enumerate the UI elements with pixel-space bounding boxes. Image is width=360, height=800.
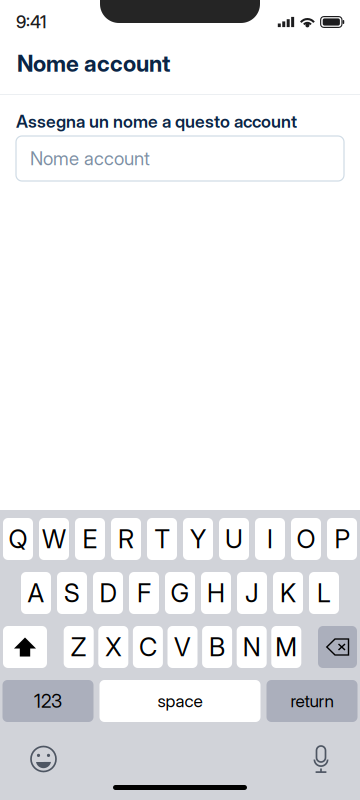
button[interactable]: K [273,572,303,614]
staticText: O [296,524,315,554]
staticText: B [209,632,225,662]
button[interactable]: Shift [3,626,47,668]
staticText: I [267,524,273,554]
button[interactable]: W [39,518,69,560]
staticText: J [245,578,259,608]
staticText: H [207,578,225,608]
button[interactable]: Y [183,518,213,560]
button[interactable]: T [147,518,177,560]
staticText: Nome account [17,50,170,77]
staticText: K [280,578,296,608]
button[interactable]: C [133,626,163,668]
button[interactable]: X [98,626,128,668]
button[interactable]: O [291,518,321,560]
staticText: N [243,632,261,662]
staticText: L [317,578,331,608]
button[interactable]: F [129,572,159,614]
staticText: E [82,524,97,554]
staticText: Y [190,524,206,554]
staticText: U [225,524,243,554]
staticText: M [275,632,297,662]
staticText: X [105,632,121,662]
staticText: W [42,524,66,554]
button[interactable]: G [165,572,195,614]
staticText: V [174,632,191,662]
staticText: F [137,578,151,608]
staticText: G [170,578,189,608]
staticText: T [154,524,169,554]
button[interactable]: M [271,626,301,668]
button[interactable]: Dictate [312,745,330,773]
staticText: space [157,690,202,711]
button[interactable]: E [75,518,105,560]
button[interactable]: R [111,518,141,560]
staticText: Nome account [30,147,150,170]
button[interactable]: A [21,572,51,614]
staticText: 123 [34,690,62,712]
button[interactable]: Z [64,626,94,668]
button[interactable]: H [201,572,231,614]
button[interactable]: Q [3,518,33,560]
button[interactable]: J [237,572,267,614]
button[interactable]: Emoji [31,746,56,771]
button[interactable]: I [255,518,285,560]
staticText: R [118,524,134,554]
button[interactable]: U [219,518,249,560]
button[interactable]: Delete [318,626,357,668]
button[interactable]: B [202,626,232,668]
button[interactable]: S [57,572,87,614]
button[interactable]: P [327,518,357,560]
staticText: D [99,578,116,608]
button[interactable]: V [167,626,197,668]
staticText: return [290,690,333,711]
staticText: 9:41 [16,11,46,32]
button[interactable]: D [93,572,123,614]
staticText: S [64,578,80,608]
staticText: P [334,524,349,554]
button[interactable]: 123 [2,680,93,722]
staticText: Q [8,524,27,554]
staticText: Assegna un nome a questo account [16,111,297,132]
button[interactable]: return [266,680,357,722]
staticText: Z [71,632,87,662]
staticText: A [27,578,44,608]
button[interactable]: L [309,572,339,614]
button[interactable]: space [99,680,260,722]
staticText: C [139,632,157,662]
button[interactable]: N [237,626,267,668]
